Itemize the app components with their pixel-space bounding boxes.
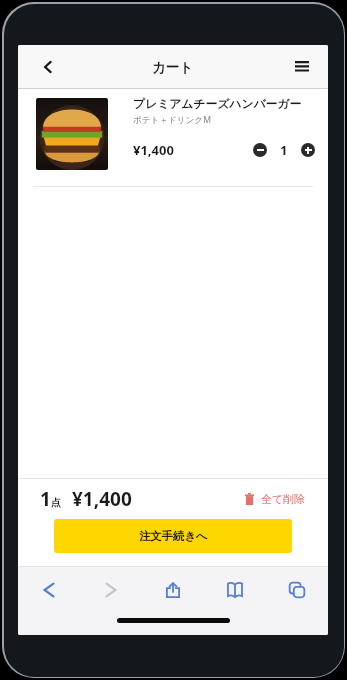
staticText: プレミアムチーズハンバーガー xyxy=(133,97,302,112)
staticText: 全て削除 xyxy=(261,492,306,506)
button[interactable]: Share xyxy=(158,575,188,605)
staticText: 点 xyxy=(51,496,61,509)
button[interactable]: Bookmarks xyxy=(220,575,250,605)
button[interactable]: Menu xyxy=(290,55,314,79)
button[interactable]: プレミアムチーズハンバーガー xyxy=(18,89,328,186)
button[interactable]: Back xyxy=(34,575,64,605)
button[interactable]: Increase quantity xyxy=(301,143,315,157)
button[interactable]: 全て削除 xyxy=(245,492,306,506)
button[interactable]: 注文手続きへ xyxy=(54,519,292,553)
button[interactable]: Forward xyxy=(96,575,126,605)
staticText: 1 xyxy=(40,486,51,512)
staticText: 1 xyxy=(280,141,288,159)
staticText: カート xyxy=(152,59,194,76)
staticText: ¥1,400 xyxy=(133,141,174,159)
staticText: 注文手続きへ xyxy=(139,529,208,543)
staticText: ¥1,400 xyxy=(72,486,132,512)
button[interactable]: Decrease quantity xyxy=(253,143,267,157)
button[interactable]: Back xyxy=(36,55,60,79)
button[interactable]: Tabs xyxy=(282,575,312,605)
staticText: ポテト＋ドリンクM xyxy=(133,114,211,126)
